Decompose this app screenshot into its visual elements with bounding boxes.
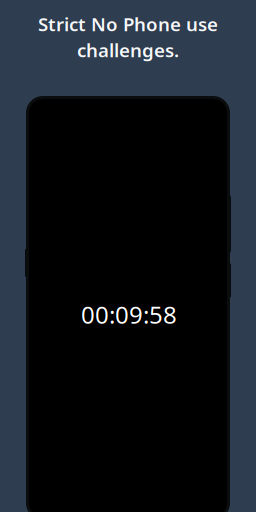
staticText: Strict No Phone use [38, 12, 218, 36]
staticText: challenges. [77, 37, 179, 62]
staticText: 00:09:58 [81, 299, 177, 330]
